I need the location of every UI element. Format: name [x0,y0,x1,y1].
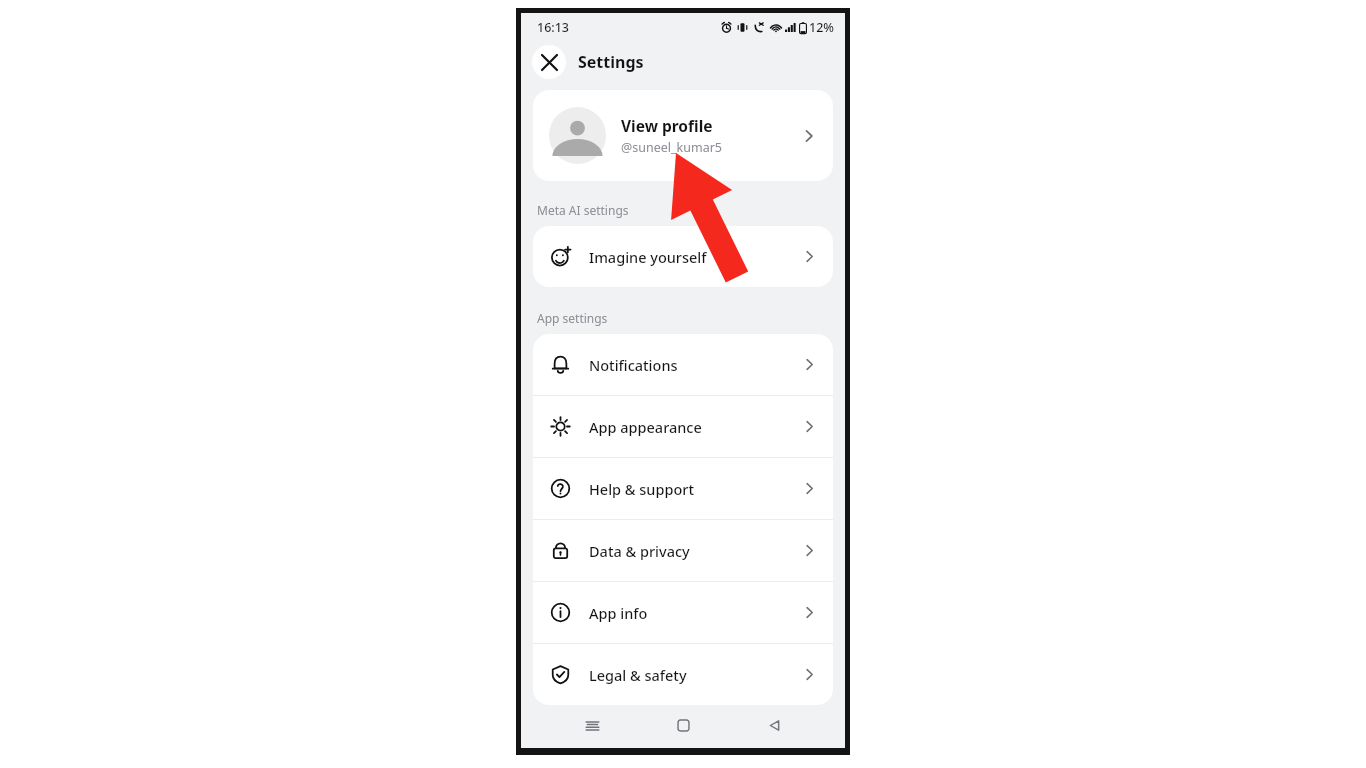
button[interactable]: Help & support [533,458,833,519]
button[interactable]: Close [532,45,566,79]
button[interactable]: Recents [572,705,612,745]
staticText: 12% [809,19,834,36]
staticText: Notifications [589,355,802,375]
button[interactable]: View profile [533,90,833,181]
staticText: Data & privacy [589,541,802,561]
staticText: Imagine yourself [589,247,802,267]
button[interactable]: App info [533,582,833,643]
staticText: View profile [621,115,713,136]
staticText: Help & support [589,479,802,499]
staticText: App appearance [589,417,802,437]
staticText: @suneel_kumar5 [621,139,722,156]
button[interactable]: Data & privacy [533,520,833,581]
button[interactable]: Back [754,705,794,745]
button[interactable]: Home [663,705,703,745]
staticText: Legal & safety [589,665,802,685]
button[interactable]: Notifications [533,334,833,395]
button[interactable]: Imagine yourself [533,226,833,287]
staticText: App settings [537,310,608,326]
staticText: 16:13 [537,19,570,36]
staticText: Meta AI settings [537,202,629,218]
button[interactable]: App appearance [533,396,833,457]
button[interactable]: Legal & safety [533,644,833,705]
staticText: App info [589,603,802,623]
staticText: Settings [578,51,644,73]
